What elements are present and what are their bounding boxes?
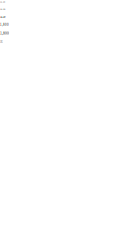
staticText: 11.20 <box>0 15 5 18</box>
staticText: 三 <box>0 39 3 44</box>
staticText: 1,800 <box>0 22 9 27</box>
staticText: 1,800 <box>0 31 9 35</box>
staticText: 11.20 <box>0 7 5 11</box>
staticText: 11.20 <box>0 0 5 3</box>
